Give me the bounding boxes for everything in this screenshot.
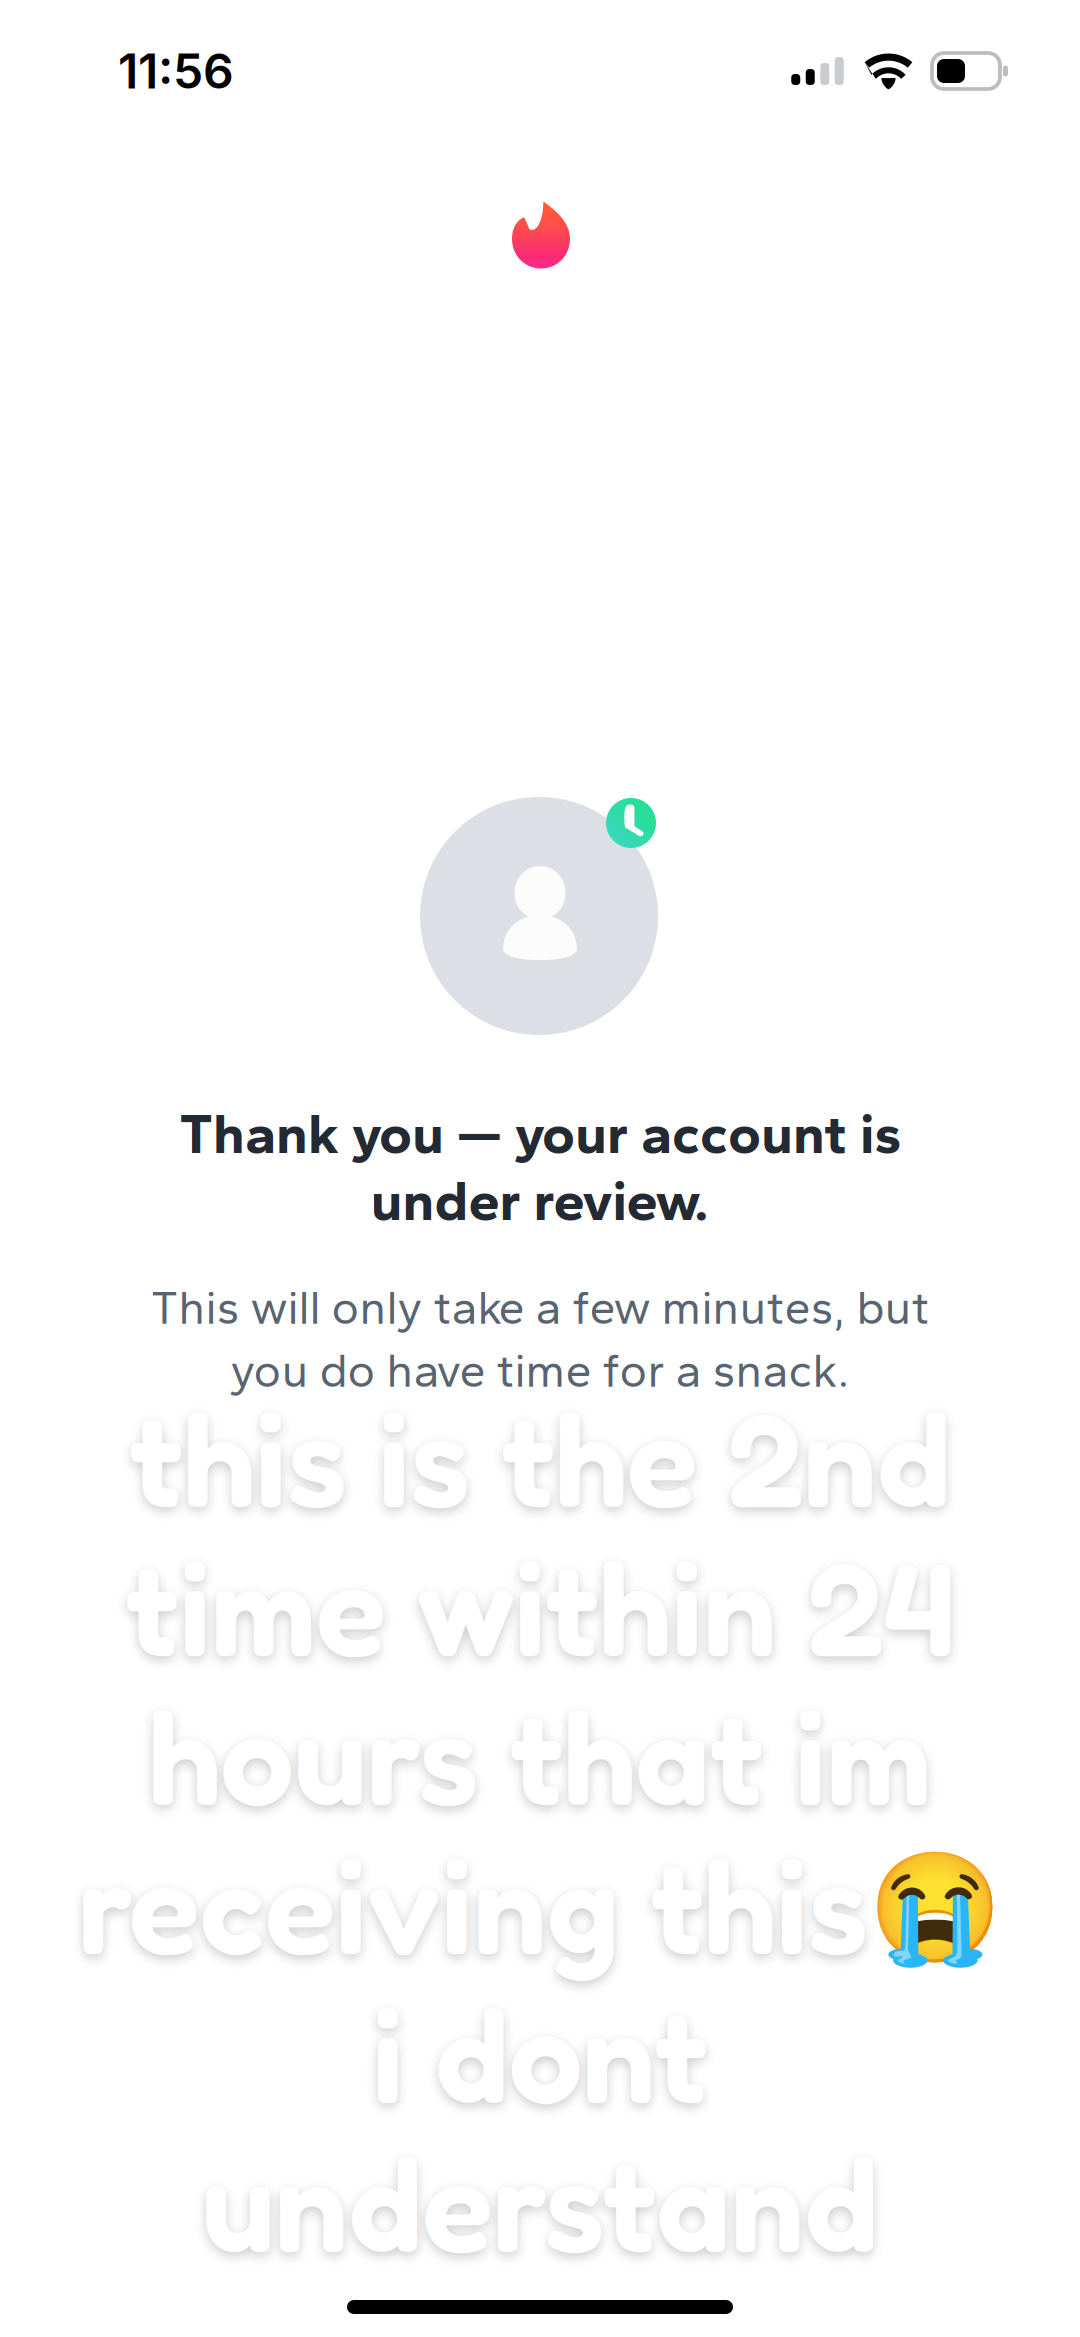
staticText: time within 24 (125, 1528, 955, 1686)
staticText: Thank you — your account is (179, 1100, 901, 1167)
staticText: This will only take a few minutes, but (150, 1279, 929, 1335)
staticText: hours that im (148, 1677, 931, 1835)
staticText: this is the 2nd (129, 1379, 951, 1537)
staticText: 11:56 (118, 42, 234, 100)
staticText: receiving this (78, 1826, 868, 1984)
staticText: understand (201, 2124, 878, 2282)
staticText: you do have time for a snack. (230, 1342, 849, 1398)
staticText: under review. (370, 1167, 709, 1234)
staticText: i dont (372, 1975, 708, 2133)
staticText: 😭 (868, 1845, 1002, 1971)
